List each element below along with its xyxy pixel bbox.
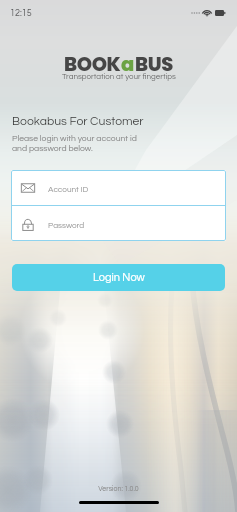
staticText: Login Now — [93, 272, 145, 283]
staticText: 12:15 — [10, 9, 32, 18]
staticText: BUS — [135, 51, 173, 78]
staticText: BOOK — [64, 51, 121, 78]
staticText: a — [121, 51, 135, 78]
button[interactable]: Account ID — [11, 170, 226, 205]
staticText: Bookabus For Customer — [12, 115, 144, 128]
staticText: Please login with your account id and pa… — [12, 134, 137, 153]
button[interactable]: Login Now — [12, 264, 225, 291]
staticText: Transportation at your fingertips — [62, 72, 176, 80]
staticText: Account ID — [48, 185, 89, 193]
staticText: Password — [48, 221, 85, 229]
staticText: Version: 1.0.0 — [0, 485, 237, 492]
button[interactable]: Password — [11, 206, 226, 241]
